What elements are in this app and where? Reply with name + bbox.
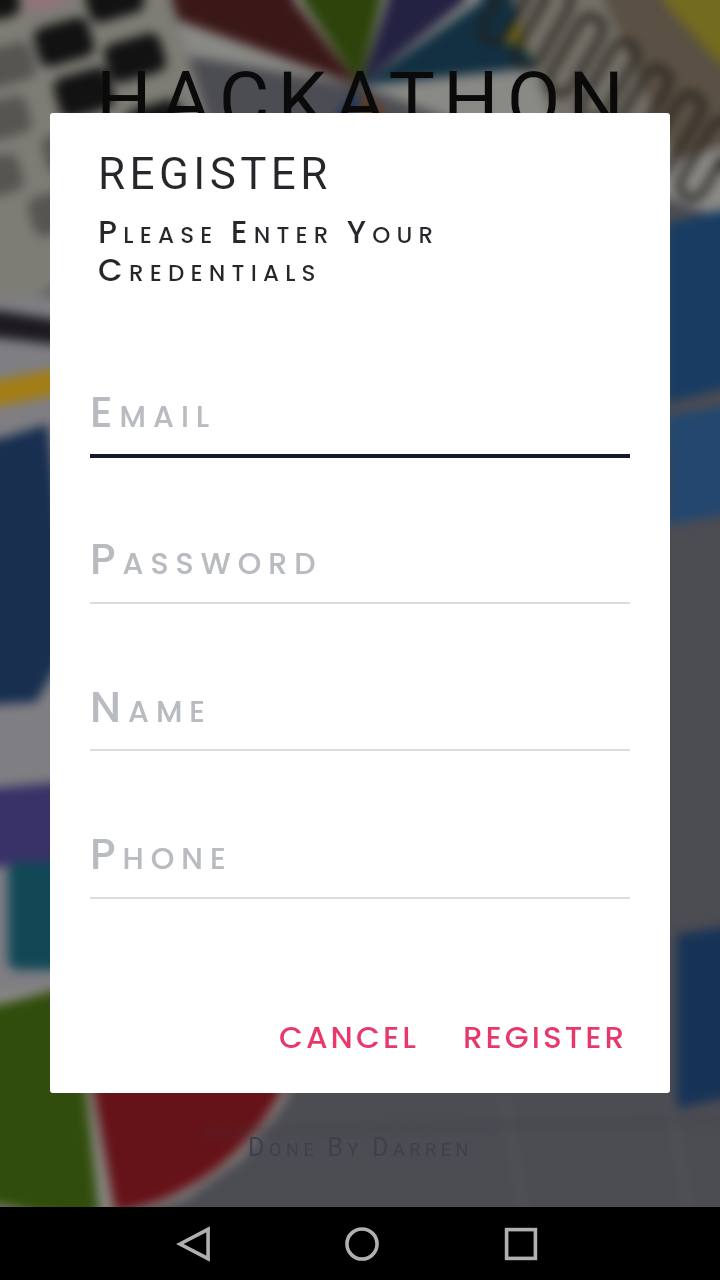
staticText: HACKATHON — [96, 55, 632, 146]
button[interactable]: Recents — [490, 1213, 552, 1275]
staticText: REGISTER — [463, 1015, 628, 1058]
staticText: PHONE — [90, 824, 233, 884]
staticText: REGISTER — [98, 148, 332, 200]
staticText: DONE BY DARREN — [248, 1133, 473, 1162]
staticText: PLEASE ENTER YOUR CREDENTIALS — [98, 209, 440, 292]
staticText: PASSWORD — [90, 529, 323, 589]
button[interactable]: Home — [331, 1213, 393, 1275]
staticText: CANCEL — [279, 1015, 419, 1058]
staticText: EMAIL — [90, 382, 217, 442]
button[interactable]: Back — [163, 1213, 225, 1275]
staticText: NAME — [90, 677, 213, 737]
button[interactable]: REGISTER — [453, 1007, 638, 1066]
button[interactable]: CANCEL — [269, 1007, 429, 1066]
